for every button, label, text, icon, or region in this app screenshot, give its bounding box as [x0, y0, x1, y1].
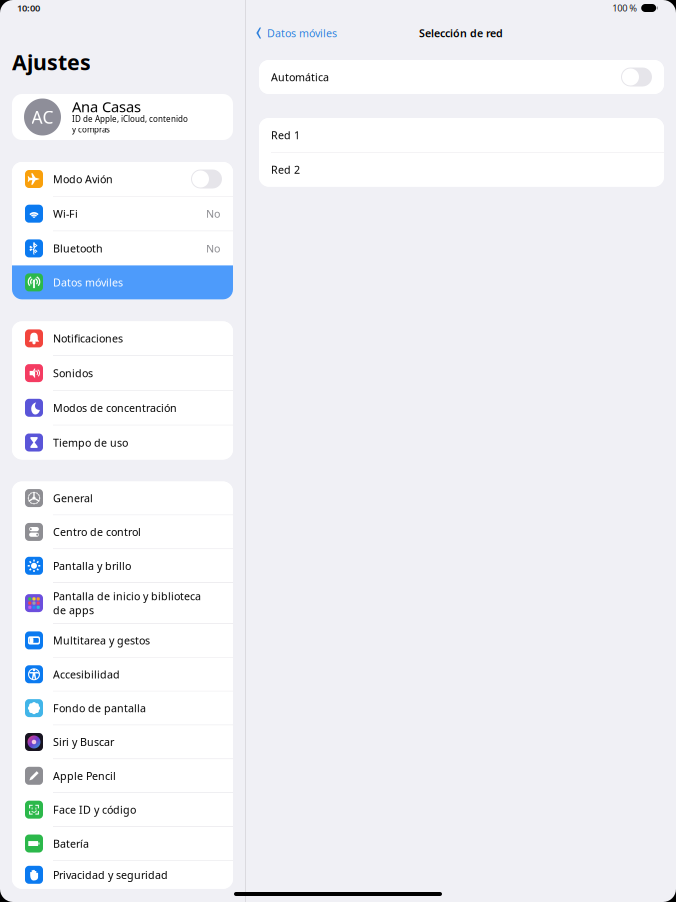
staticText: Pantalla de inicio y biblioteca de apps [53, 589, 201, 617]
staticText: Bluetooth [53, 241, 103, 255]
button[interactable]: Apple Pencil [12, 759, 233, 792]
staticText: AC [31, 105, 53, 128]
staticText: Selección de red [419, 26, 503, 40]
button[interactable]: General [12, 481, 233, 515]
staticText: Face ID y código [53, 803, 136, 817]
button[interactable]: Pantalla y brillo [12, 549, 233, 582]
staticText: Modos de concentración [53, 401, 177, 415]
button[interactable]: Fondo de pantalla [12, 691, 233, 725]
staticText: Red 1 [271, 128, 300, 142]
button[interactable]: Notificaciones [12, 321, 233, 355]
staticText: Wi-Fi [53, 207, 78, 221]
button[interactable]: Privacidad y seguridad [12, 861, 233, 889]
button[interactable]: Datos móviles [246, 20, 345, 46]
staticText: Batería [53, 836, 89, 851]
button[interactable]: Red 1 [259, 118, 664, 152]
staticText: No [206, 207, 220, 221]
button[interactable]: Tiempo de uso [12, 425, 233, 459]
staticText: Sonidos [53, 366, 93, 380]
button[interactable]: Sonidos [12, 356, 233, 390]
staticText: 100 % [612, 2, 637, 14]
staticText: Multitarea y gestos [53, 633, 150, 647]
staticText: Pantalla y brillo [53, 559, 131, 573]
button[interactable]: Face ID y código [12, 793, 233, 826]
staticText: Siri y Buscar [53, 735, 114, 749]
staticText: Ana Casas [72, 97, 141, 116]
button[interactable]: AC [12, 94, 233, 140]
staticText: Datos móviles [267, 26, 337, 40]
button[interactable]: Bluetooth [12, 231, 233, 265]
staticText: y compras [72, 124, 110, 135]
staticText: Tiempo de uso [53, 435, 128, 450]
button[interactable]: Modos de concentración [12, 391, 233, 425]
button[interactable]: Centro de control [12, 515, 233, 548]
button[interactable]: Datos móviles [12, 265, 233, 299]
staticText: Modo Avión [53, 172, 113, 186]
staticText: Accesibilidad [53, 667, 120, 681]
staticText: Centro de control [53, 525, 141, 539]
staticText: Automática [271, 70, 329, 84]
button[interactable]: Red 2 [259, 153, 664, 187]
button[interactable]: Modo Avión [12, 162, 233, 196]
staticText: Apple Pencil [53, 769, 116, 783]
staticText: Datos móviles [53, 275, 123, 289]
button[interactable]: Siri y Buscar [12, 725, 233, 758]
button[interactable]: Automática [259, 60, 664, 94]
button[interactable]: Multitarea y gestos [12, 624, 233, 657]
button[interactable]: Accesibilidad [12, 658, 233, 691]
staticText: Red 2 [271, 163, 300, 177]
staticText: Ajustes [12, 48, 91, 76]
staticText: ID de Apple, iCloud, contenido [72, 114, 188, 124]
staticText: General [53, 491, 93, 505]
staticText: Privacidad y seguridad [53, 868, 168, 882]
staticText: No [206, 241, 220, 255]
staticText: Notificaciones [53, 331, 123, 345]
staticText: Fondo de pantalla [53, 701, 146, 715]
button[interactable]: Wi-Fi [12, 197, 233, 231]
button[interactable]: Batería [12, 827, 233, 860]
staticText: 10:00 [17, 2, 40, 14]
button[interactable]: Pantalla de inicio y biblioteca de apps [12, 583, 233, 623]
